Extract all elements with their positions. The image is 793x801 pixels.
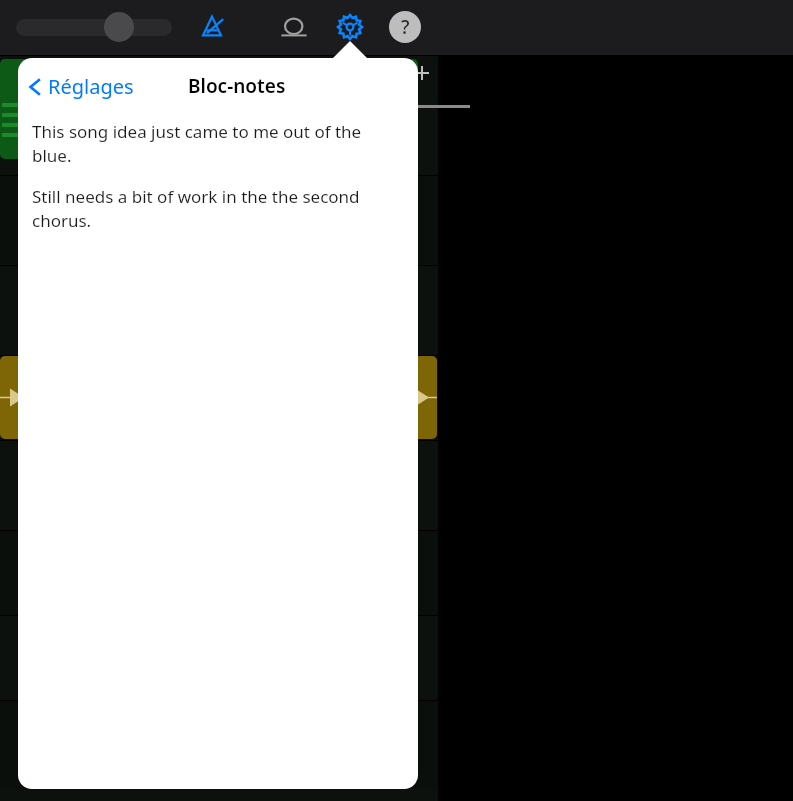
button[interactable]: Réglages [28, 73, 134, 100]
button[interactable]: Volume [16, 19, 172, 36]
staticText: Réglages [48, 73, 134, 100]
button[interactable]: Add track [410, 61, 434, 85]
button[interactable]: Help [389, 11, 421, 43]
button[interactable]: Slider handle [104, 12, 134, 42]
staticText: Bloc-notes [188, 73, 286, 99]
button[interactable]: Settings [332, 9, 368, 45]
staticText: ? [401, 14, 410, 40]
button[interactable]: Loop [276, 9, 312, 45]
button[interactable]: Metronome [194, 9, 230, 45]
staticText: This song idea just came to me out of th… [32, 120, 404, 167]
button[interactable] [0, 356, 437, 439]
button[interactable] [0, 59, 418, 159]
staticText: Still needs a bit of work in the the sec… [32, 185, 404, 232]
